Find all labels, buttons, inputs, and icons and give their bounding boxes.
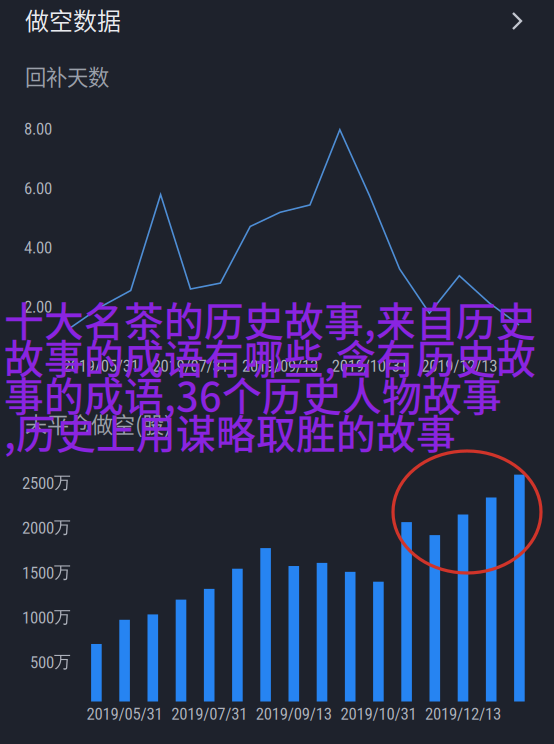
staticText: 6.00	[24, 179, 52, 198]
staticText: 8.00	[24, 119, 52, 139]
staticText: 事的成语,36个历史人物故事	[4, 365, 502, 423]
staticText: 2019/12/13	[425, 704, 501, 724]
staticText: 做空数据	[25, 2, 121, 37]
staticText: 2000万	[22, 517, 71, 538]
staticText: 2.00	[24, 297, 52, 317]
staticText: 未平仓做空(股)	[25, 407, 171, 439]
staticText: 1000万	[22, 606, 71, 628]
staticText: 2019/07/31	[152, 356, 228, 376]
staticText: 4.00	[24, 238, 52, 258]
staticText: 2019/09/13	[242, 356, 318, 376]
staticText: 2019/05/31	[87, 704, 163, 724]
staticText: 回补天数	[25, 61, 109, 91]
staticText: 2500万	[22, 472, 71, 493]
button[interactable]: Open	[500, 4, 534, 38]
staticText: 2019/12/13	[421, 356, 497, 376]
staticText: 故事的成语有哪些,含有历史故	[4, 328, 536, 385]
staticText: 2019/10/31	[332, 356, 408, 376]
staticText: 500万	[30, 651, 71, 672]
staticText: 2019/05/31	[63, 356, 139, 376]
staticText: 十大名茶的历史故事,来自历史	[4, 290, 536, 348]
staticText: ,历史上用谋略取胜的故事	[4, 403, 456, 460]
staticText: 2019/09/13	[256, 704, 332, 724]
button[interactable]: 做空数据	[0, 2, 175, 36]
staticText: 1500万	[22, 562, 71, 583]
staticText: 2019/07/31	[171, 704, 247, 724]
staticText: 2019/10/31	[340, 704, 416, 724]
